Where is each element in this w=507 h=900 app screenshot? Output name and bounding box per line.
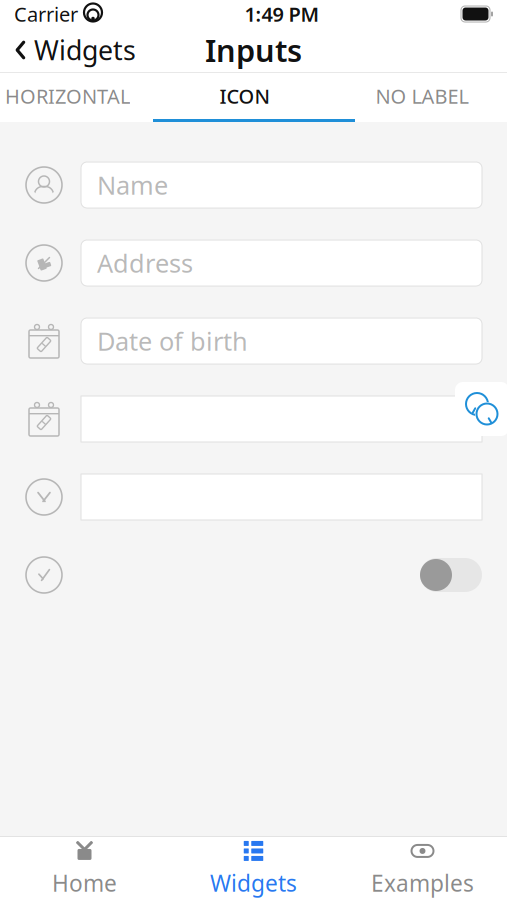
button[interactable]: Chat <box>455 382 507 436</box>
button[interactable]: Examples <box>338 837 507 900</box>
button[interactable]: Widgets <box>169 837 338 900</box>
button[interactable]: Date of birth <box>81 318 482 364</box>
button[interactable]: Toggle <box>420 558 482 592</box>
button[interactable]: Address <box>81 240 482 286</box>
staticText: ICON <box>219 83 270 109</box>
staticText: Carrier <box>14 1 78 27</box>
button[interactable] <box>81 396 482 442</box>
staticText: NO LABEL <box>375 83 468 109</box>
staticText: Name <box>97 168 168 202</box>
staticText: Address <box>97 246 193 280</box>
staticText: 1:49 PM <box>244 1 319 27</box>
button[interactable] <box>81 474 482 520</box>
staticText: Widgets <box>34 32 136 68</box>
button[interactable]: NO LABEL <box>346 73 498 119</box>
staticText: Date of birth <box>97 324 248 358</box>
staticText: HORIZONTAL <box>5 83 130 109</box>
staticText: Examples <box>371 868 474 898</box>
button[interactable]: Widgets <box>0 28 150 72</box>
staticText: Home <box>52 868 117 898</box>
button[interactable]: Home <box>0 837 169 900</box>
button[interactable]: Name <box>81 162 482 208</box>
button[interactable]: ICON <box>144 73 346 119</box>
button[interactable]: HORIZONTAL <box>9 73 144 119</box>
staticText: Inputs <box>205 30 302 70</box>
staticText: Widgets <box>210 868 297 898</box>
